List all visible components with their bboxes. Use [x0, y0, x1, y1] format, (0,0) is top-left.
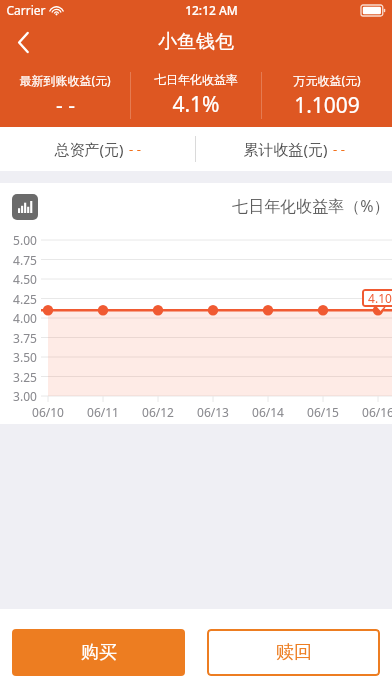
staticText: 06/15	[307, 404, 339, 420]
button[interactable]: 赎回	[207, 629, 380, 676]
staticText: 06/10	[32, 404, 64, 420]
staticText: - -	[129, 140, 141, 158]
staticText: 12:12 AM	[185, 2, 238, 18]
staticText: 4.50	[13, 271, 37, 287]
staticText: 七日年化收益率（%）	[232, 195, 390, 217]
staticText: 3.75	[13, 330, 37, 346]
staticText: 4.10	[368, 290, 392, 306]
staticText: - -	[333, 140, 345, 158]
staticText: 3.25	[13, 369, 37, 385]
staticText: 3.00	[13, 388, 37, 404]
button[interactable]: 万元收益(元)	[262, 64, 392, 127]
staticText: 1.1009	[294, 91, 360, 120]
staticText: 06/12	[142, 404, 174, 420]
staticText: 4.75	[13, 252, 37, 268]
staticText: 4.00	[13, 310, 37, 326]
button[interactable]: 最新到账收益(元)	[0, 64, 130, 127]
staticText: Carrier	[6, 2, 46, 18]
staticText: 3.50	[13, 349, 37, 365]
staticText: 赎回	[276, 641, 312, 664]
staticText: 4.1%	[172, 90, 220, 119]
staticText: 小鱼钱包	[158, 30, 234, 54]
staticText: 4.25	[13, 291, 37, 307]
staticText: 06/16	[362, 404, 392, 420]
staticText: 总资产(元)	[54, 139, 124, 159]
button[interactable]: 七日年化收益率	[131, 64, 261, 127]
staticText: 最新到账收益(元)	[19, 72, 111, 88]
staticText: 06/11	[87, 404, 119, 420]
staticText: 5.00	[13, 232, 37, 248]
staticText: - -	[56, 91, 75, 120]
button[interactable]: 累计收益(元)	[196, 127, 392, 171]
staticText: 万元收益(元)	[293, 72, 361, 88]
staticText: 购买	[81, 641, 117, 664]
staticText: 06/13	[197, 404, 229, 420]
button[interactable]: Chart	[12, 194, 38, 220]
staticText: 06/14	[252, 404, 284, 420]
button[interactable]: 总资产(元)	[0, 127, 195, 171]
staticText: 七日年化收益率	[154, 72, 238, 87]
button[interactable]: 购买	[12, 629, 185, 676]
staticText: 累计收益(元)	[243, 139, 328, 159]
button[interactable]: Back	[0, 20, 46, 64]
